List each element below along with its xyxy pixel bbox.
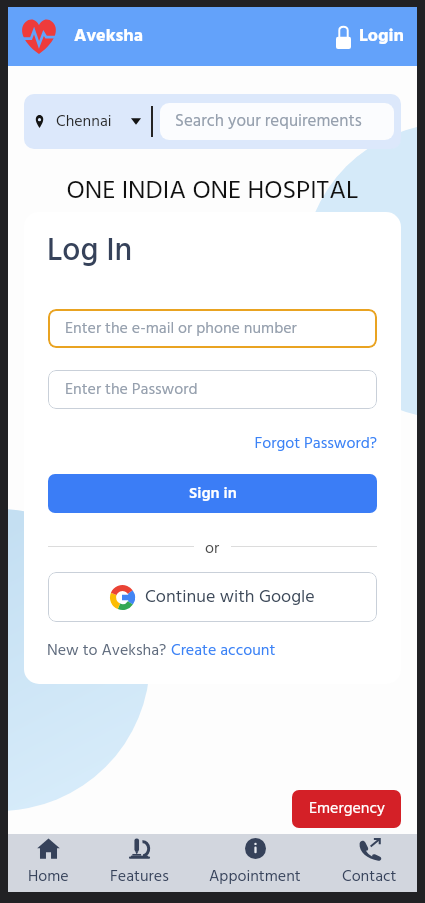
button[interactable]: Enter the Password [48,370,377,409]
staticText: ONE INDIA ONE HOSPITAL [8,171,417,213]
button[interactable]: Features [108,834,171,892]
button[interactable]: Create account [171,638,276,664]
button[interactable]: Contact [340,834,399,892]
staticText: or [205,536,220,556]
staticText: Features [110,864,169,890]
button[interactable]: Login [336,22,404,51]
button[interactable]: Sign in [48,474,377,513]
staticText: Emergency [309,796,385,822]
staticText: Home [28,864,69,890]
staticText: Enter the Password [65,377,198,403]
staticText: Aveksha [74,22,144,51]
button[interactable]: Forgot Password? [48,431,377,457]
other: Login [336,25,351,49]
staticText: Log In [47,226,133,277]
staticText: Sign in [189,481,237,507]
staticText: Chennai [56,109,112,135]
staticText: Appointment [209,864,301,890]
button[interactable]: Appointment [207,834,303,892]
staticText: Contact [342,864,397,890]
staticText: Login [359,22,404,51]
button[interactable]: Search your requirements [160,103,394,140]
staticText: Search your requirements [175,108,362,135]
staticText: New to Aveksha? [47,638,171,664]
button[interactable]: Chennai [24,94,151,149]
button[interactable]: Home [26,834,71,892]
staticText: Continue with Google [145,583,315,612]
button[interactable]: Emergency [292,790,401,828]
button[interactable]: Enter the e-mail or phone number [48,309,377,348]
staticText: Enter the e-mail or phone number [65,316,297,342]
button[interactable]: Continue with Google [48,572,377,622]
